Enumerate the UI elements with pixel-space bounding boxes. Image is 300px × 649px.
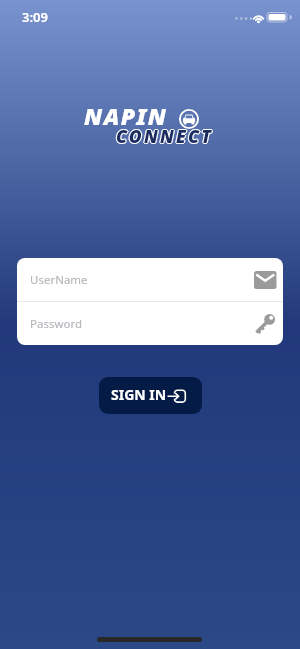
staticText: CONNECT	[115, 124, 213, 148]
staticText: CONNECT	[116, 123, 214, 147]
staticText: SIGN IN	[111, 385, 167, 404]
staticText: 3:09	[22, 8, 48, 26]
staticText: CONNECT	[116, 125, 214, 149]
staticText: NAPIN	[84, 100, 168, 131]
staticText: CONNECT	[117, 124, 215, 148]
staticText: UserName	[30, 272, 254, 288]
button[interactable]: SIGN IN	[99, 377, 202, 414]
staticText: Password	[30, 316, 253, 332]
staticText: CONNECT	[116, 124, 214, 148]
button[interactable]: Password	[17, 302, 283, 345]
button[interactable]: UserName	[17, 258, 283, 301]
